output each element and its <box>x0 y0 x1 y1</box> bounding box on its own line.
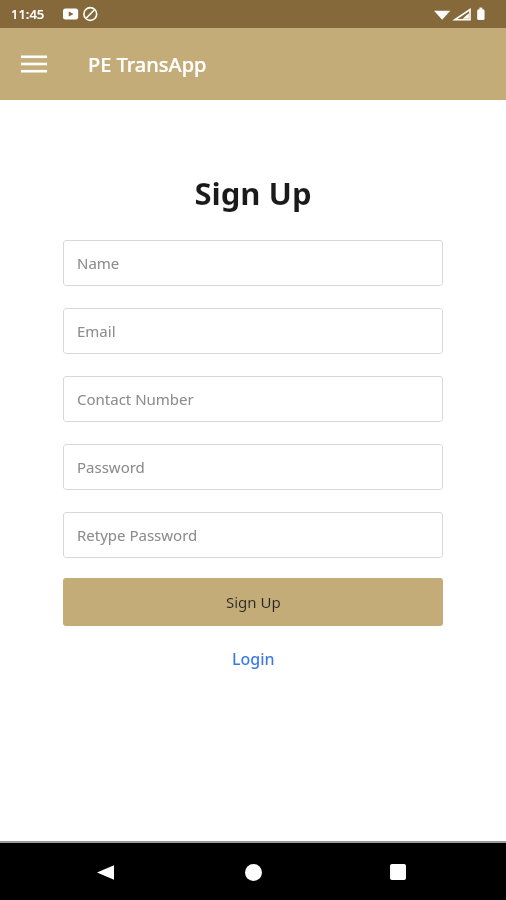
staticText: Sign Up <box>194 172 312 214</box>
button[interactable]: Email <box>63 308 443 354</box>
staticText: Sign Up <box>226 592 281 612</box>
button[interactable]: Open navigation menu <box>10 40 58 88</box>
button[interactable]: Retype Password <box>63 512 443 558</box>
staticText: Password <box>77 457 145 477</box>
staticText: PE TransApp <box>88 51 207 78</box>
staticText: 11:45 <box>11 5 45 23</box>
button[interactable]: Home <box>231 850 275 894</box>
staticText: Contact Number <box>77 389 194 409</box>
staticText: Email <box>77 321 116 341</box>
staticText: Name <box>77 253 120 273</box>
staticText: Login <box>232 648 275 670</box>
button[interactable]: Password <box>63 444 443 490</box>
button[interactable]: Login <box>193 644 313 674</box>
button[interactable]: Sign Up <box>63 578 443 626</box>
staticText: Retype Password <box>77 525 198 545</box>
button[interactable]: Back <box>83 850 127 894</box>
button[interactable]: Name <box>63 240 443 286</box>
button[interactable]: Recent apps <box>376 850 420 894</box>
button[interactable]: Contact Number <box>63 376 443 422</box>
